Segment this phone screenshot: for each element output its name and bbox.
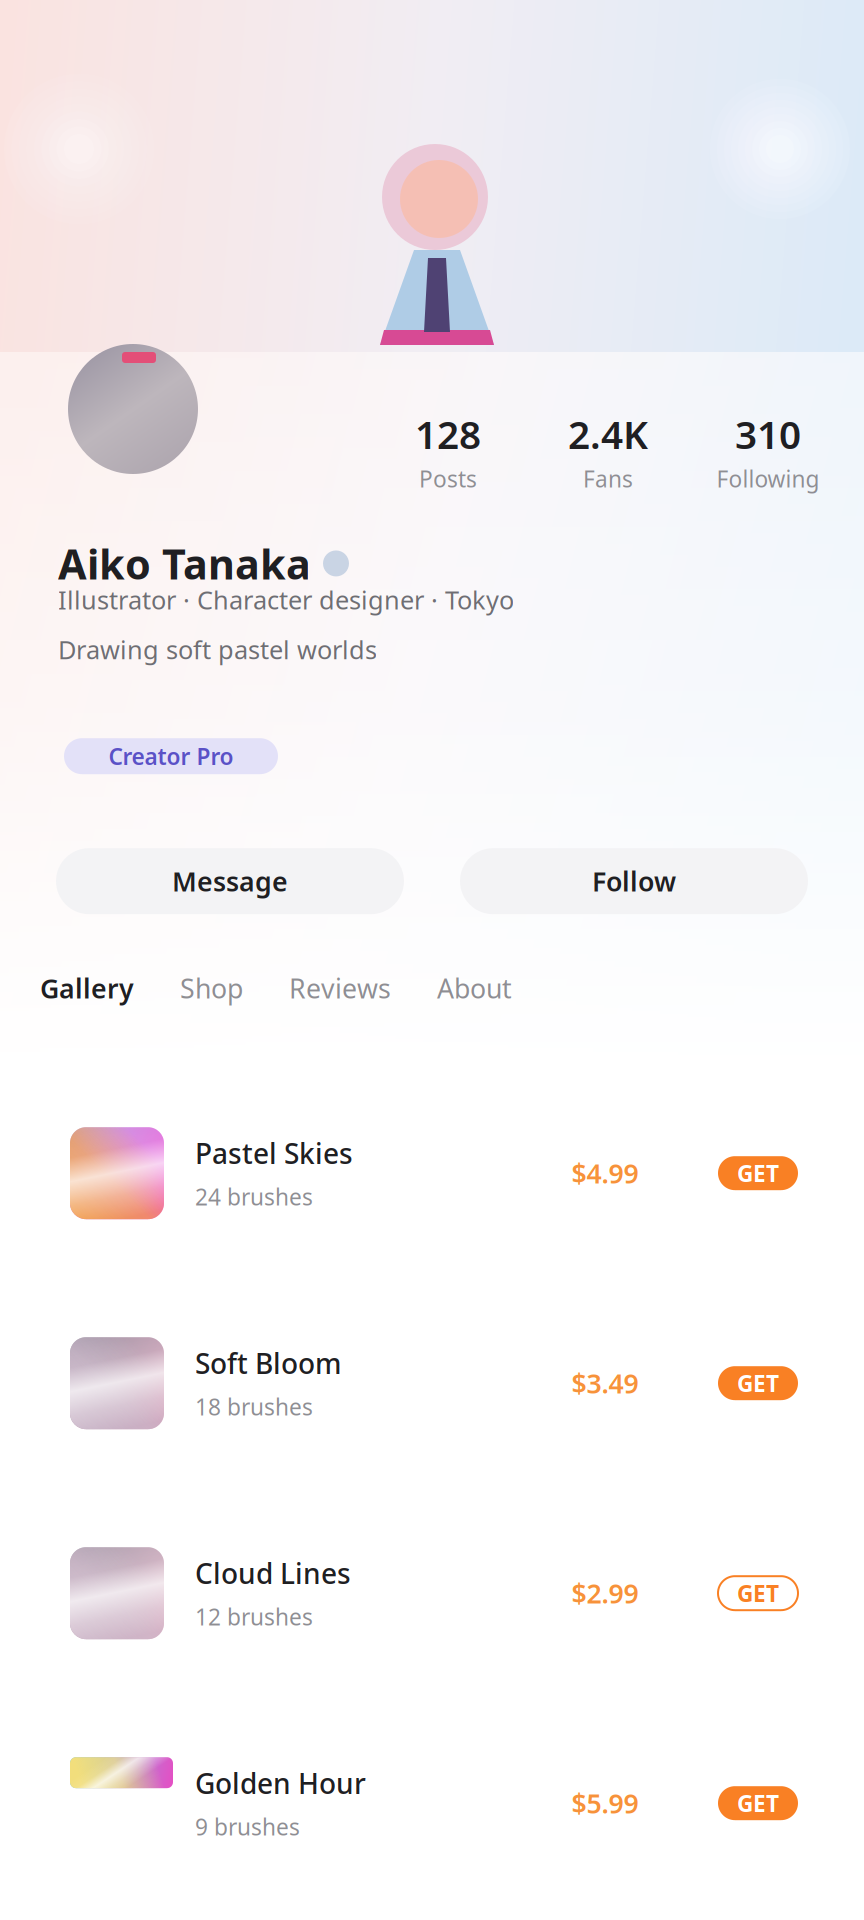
button[interactable]: Creator Pro xyxy=(64,738,278,774)
button[interactable]: 310 xyxy=(688,406,848,496)
staticText: 128 xyxy=(415,408,481,460)
staticText: GET xyxy=(737,1578,779,1608)
staticText: 24 brushes xyxy=(195,1182,313,1212)
staticText: Message xyxy=(172,863,288,899)
staticText: $4.99 xyxy=(571,1155,638,1191)
staticText: GET xyxy=(737,1368,779,1398)
staticText: Aiko Tanaka xyxy=(58,536,311,591)
button[interactable]: Golden Hour xyxy=(0,1698,864,1908)
staticText: 9 brushes xyxy=(195,1812,300,1842)
staticText: Reviews xyxy=(289,970,391,1006)
staticText: Shop xyxy=(180,970,243,1006)
staticText: Follow xyxy=(592,863,676,899)
staticText: Drawing soft pastel worlds xyxy=(58,632,377,666)
staticText: GET xyxy=(737,1788,779,1818)
staticText: 18 brushes xyxy=(195,1392,313,1422)
button[interactable]: Message xyxy=(56,848,404,914)
staticText: Soft Bloom xyxy=(195,1344,342,1382)
button[interactable]: Reviews xyxy=(281,966,399,1010)
button[interactable]: Pastel Skies xyxy=(0,1068,864,1278)
staticText: Illustrator · Character designer · Tokyo xyxy=(58,583,514,616)
staticText: Pastel Skies xyxy=(195,1134,353,1172)
button[interactable]: Shop xyxy=(172,966,251,1010)
button[interactable]: 128 xyxy=(368,406,528,496)
button[interactable]: Soft Bloom xyxy=(0,1278,864,1488)
staticText: Gallery xyxy=(40,970,134,1006)
staticText: $2.99 xyxy=(571,1575,638,1611)
button[interactable]: Cloud Lines xyxy=(0,1488,864,1698)
staticText: Fans xyxy=(583,464,633,494)
staticText: Cloud Lines xyxy=(195,1554,351,1592)
staticText: $3.49 xyxy=(571,1365,638,1401)
button[interactable]: 2.4K xyxy=(528,406,688,496)
staticText: Following xyxy=(716,464,819,494)
staticText: $5.99 xyxy=(571,1785,638,1821)
staticText: 310 xyxy=(735,408,801,460)
staticText: Creator Pro xyxy=(108,741,233,771)
staticText: Posts xyxy=(419,464,477,494)
staticText: 2.4K xyxy=(568,408,648,460)
staticText: About xyxy=(437,970,512,1006)
staticText: GET xyxy=(737,1158,779,1188)
staticText: 12 brushes xyxy=(195,1602,313,1632)
button[interactable]: About xyxy=(429,966,520,1010)
staticText: Golden Hour xyxy=(195,1764,366,1802)
button[interactable]: Gallery xyxy=(32,966,142,1010)
button[interactable]: Follow xyxy=(460,848,808,914)
